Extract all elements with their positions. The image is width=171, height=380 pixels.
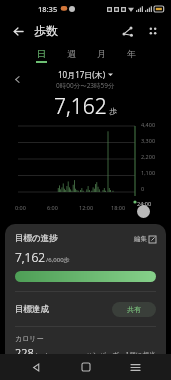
staticText: 6:00: [47, 204, 58, 211]
staticText: カロリー: [15, 334, 44, 343]
button[interactable]: 日: [26, 44, 56, 66]
staticText: 1,100: [141, 169, 156, 176]
staticText: 3,300: [141, 137, 156, 144]
staticText: 目標の進捗: [15, 233, 58, 244]
staticText: 日: [37, 48, 46, 59]
button[interactable]: 年: [116, 44, 146, 66]
staticText: 7,162: [15, 249, 46, 265]
staticText: 18:35: [38, 4, 58, 14]
staticText: 月: [97, 48, 106, 59]
button[interactable]: Time scrubber: [137, 205, 150, 218]
staticText: /6,000歩: [46, 256, 70, 264]
button[interactable]: Recent apps: [122, 354, 148, 380]
button[interactable]: More options: [143, 21, 163, 41]
staticText: 4,400: [141, 121, 156, 128]
button[interactable]: Back: [8, 21, 28, 41]
button[interactable]: Previous day: [9, 71, 25, 87]
staticText: 週: [67, 48, 76, 59]
button[interactable]: 週: [56, 44, 86, 66]
button[interactable]: Home: [73, 354, 99, 380]
staticText: 0時00分〜23時59分: [56, 81, 115, 90]
staticText: 10月17日(木): [58, 69, 106, 80]
button[interactable]: Share route: [117, 21, 137, 41]
staticText: 0: [141, 185, 145, 192]
button[interactable]: 月: [86, 44, 116, 66]
button[interactable]: 10月17日(木): [58, 69, 113, 80]
staticText: 7,162: [54, 92, 107, 118]
staticText: 2,200: [141, 153, 156, 160]
staticText: 編集: [134, 235, 147, 243]
staticText: 目標達成: [15, 304, 49, 315]
staticText: 12:00: [79, 204, 94, 211]
staticText: kcal: [36, 351, 47, 359]
staticText: ハンバーガー1個に相当: [86, 350, 156, 359]
staticText: 18:00: [111, 204, 126, 211]
staticText: 歩: [109, 106, 117, 116]
button[interactable]: 共有: [112, 302, 156, 317]
staticText: 24:00: [137, 200, 152, 207]
staticText: 共有: [127, 305, 141, 314]
staticText: 年: [127, 48, 136, 59]
button[interactable]: 編集: [134, 235, 156, 243]
staticText: 0:00: [15, 204, 26, 211]
button[interactable]: Back: [23, 354, 49, 380]
staticText: 歩数: [34, 23, 58, 38]
staticText: 228: [15, 345, 34, 360]
